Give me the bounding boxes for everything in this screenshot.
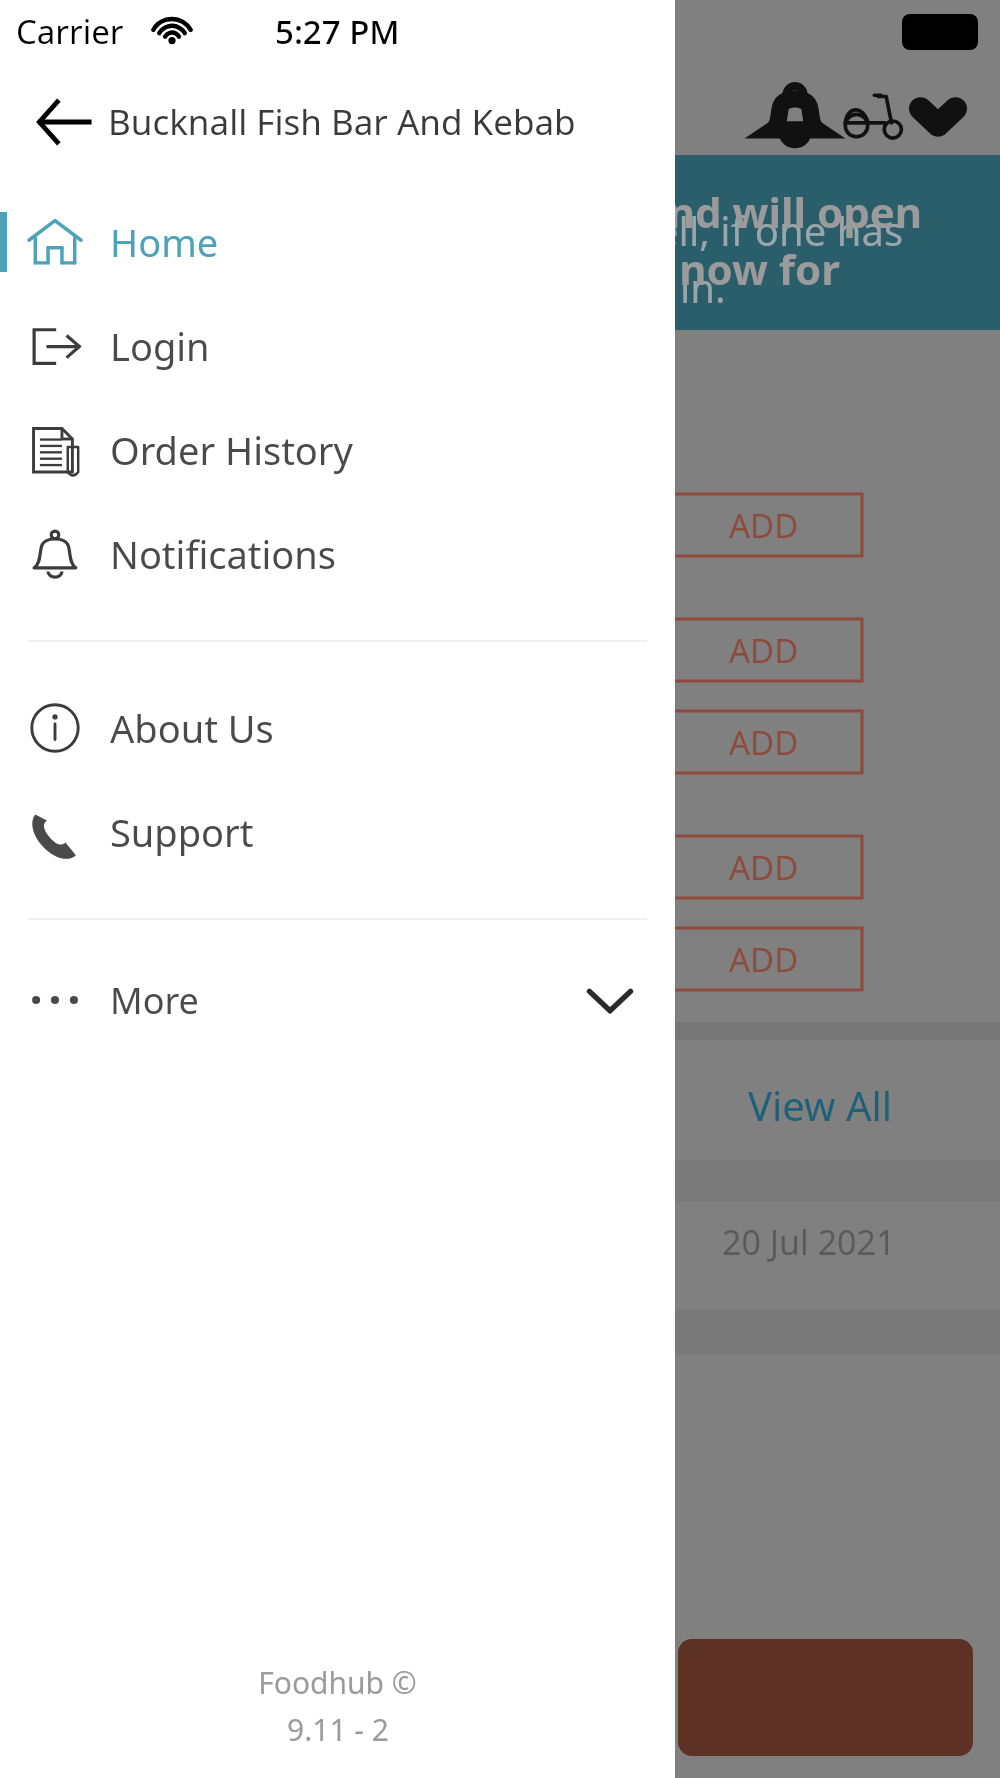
button[interactable]: Home bbox=[0, 190, 675, 294]
staticText: ADD bbox=[729, 845, 799, 890]
staticText: Order History bbox=[110, 424, 353, 476]
staticText: ADD bbox=[729, 628, 799, 673]
staticText: ed and will open bbox=[580, 183, 923, 240]
staticText: Carrier bbox=[16, 9, 124, 54]
button[interactable]: Expand bbox=[908, 86, 968, 146]
button[interactable]: Login bbox=[0, 294, 675, 398]
staticText: More bbox=[110, 976, 199, 1025]
staticText: About Us bbox=[110, 702, 274, 754]
button[interactable]: Delivery bbox=[838, 80, 908, 150]
button[interactable]: Order History bbox=[0, 398, 675, 502]
button[interactable]: More bbox=[0, 948, 675, 1052]
staticText: Bucknall Fish Bar And Kebab House bbox=[108, 98, 675, 146]
staticText: Foodhub © bbox=[258, 1662, 417, 1703]
button[interactable]: Notifications bbox=[760, 80, 830, 150]
staticText: 5:27 PM bbox=[275, 9, 400, 54]
button[interactable]: ADD bbox=[665, 619, 862, 681]
button[interactable]: ADD bbox=[665, 836, 862, 898]
staticText: ADD bbox=[729, 937, 799, 982]
button[interactable]: ADD bbox=[665, 928, 862, 990]
staticText: Notifications bbox=[110, 528, 337, 580]
button[interactable]: ADD bbox=[665, 711, 862, 773]
button[interactable]: ADD bbox=[665, 494, 862, 556]
staticText: ADD bbox=[729, 720, 799, 765]
staticText: 9.11 - 2 bbox=[287, 1709, 389, 1750]
button[interactable]: About Us bbox=[0, 676, 675, 780]
staticText: in. bbox=[680, 260, 726, 314]
button[interactable]: Back bbox=[20, 78, 108, 166]
button[interactable]: Basket bbox=[678, 1639, 973, 1756]
staticText: Login bbox=[110, 320, 210, 372]
staticText: 20 Jul 2021 bbox=[722, 1219, 896, 1265]
button[interactable]: Notifications bbox=[0, 502, 675, 606]
staticText: ADD bbox=[729, 503, 799, 548]
button[interactable]: Support bbox=[0, 780, 675, 884]
staticText: Support bbox=[110, 806, 254, 858]
staticText: 5.00 bbox=[600, 942, 672, 991]
staticText: o well, if one has bbox=[590, 203, 904, 257]
button[interactable]: View All bbox=[748, 1078, 893, 1132]
staticText: Home bbox=[110, 216, 219, 268]
staticText: rder now for bbox=[580, 240, 841, 297]
